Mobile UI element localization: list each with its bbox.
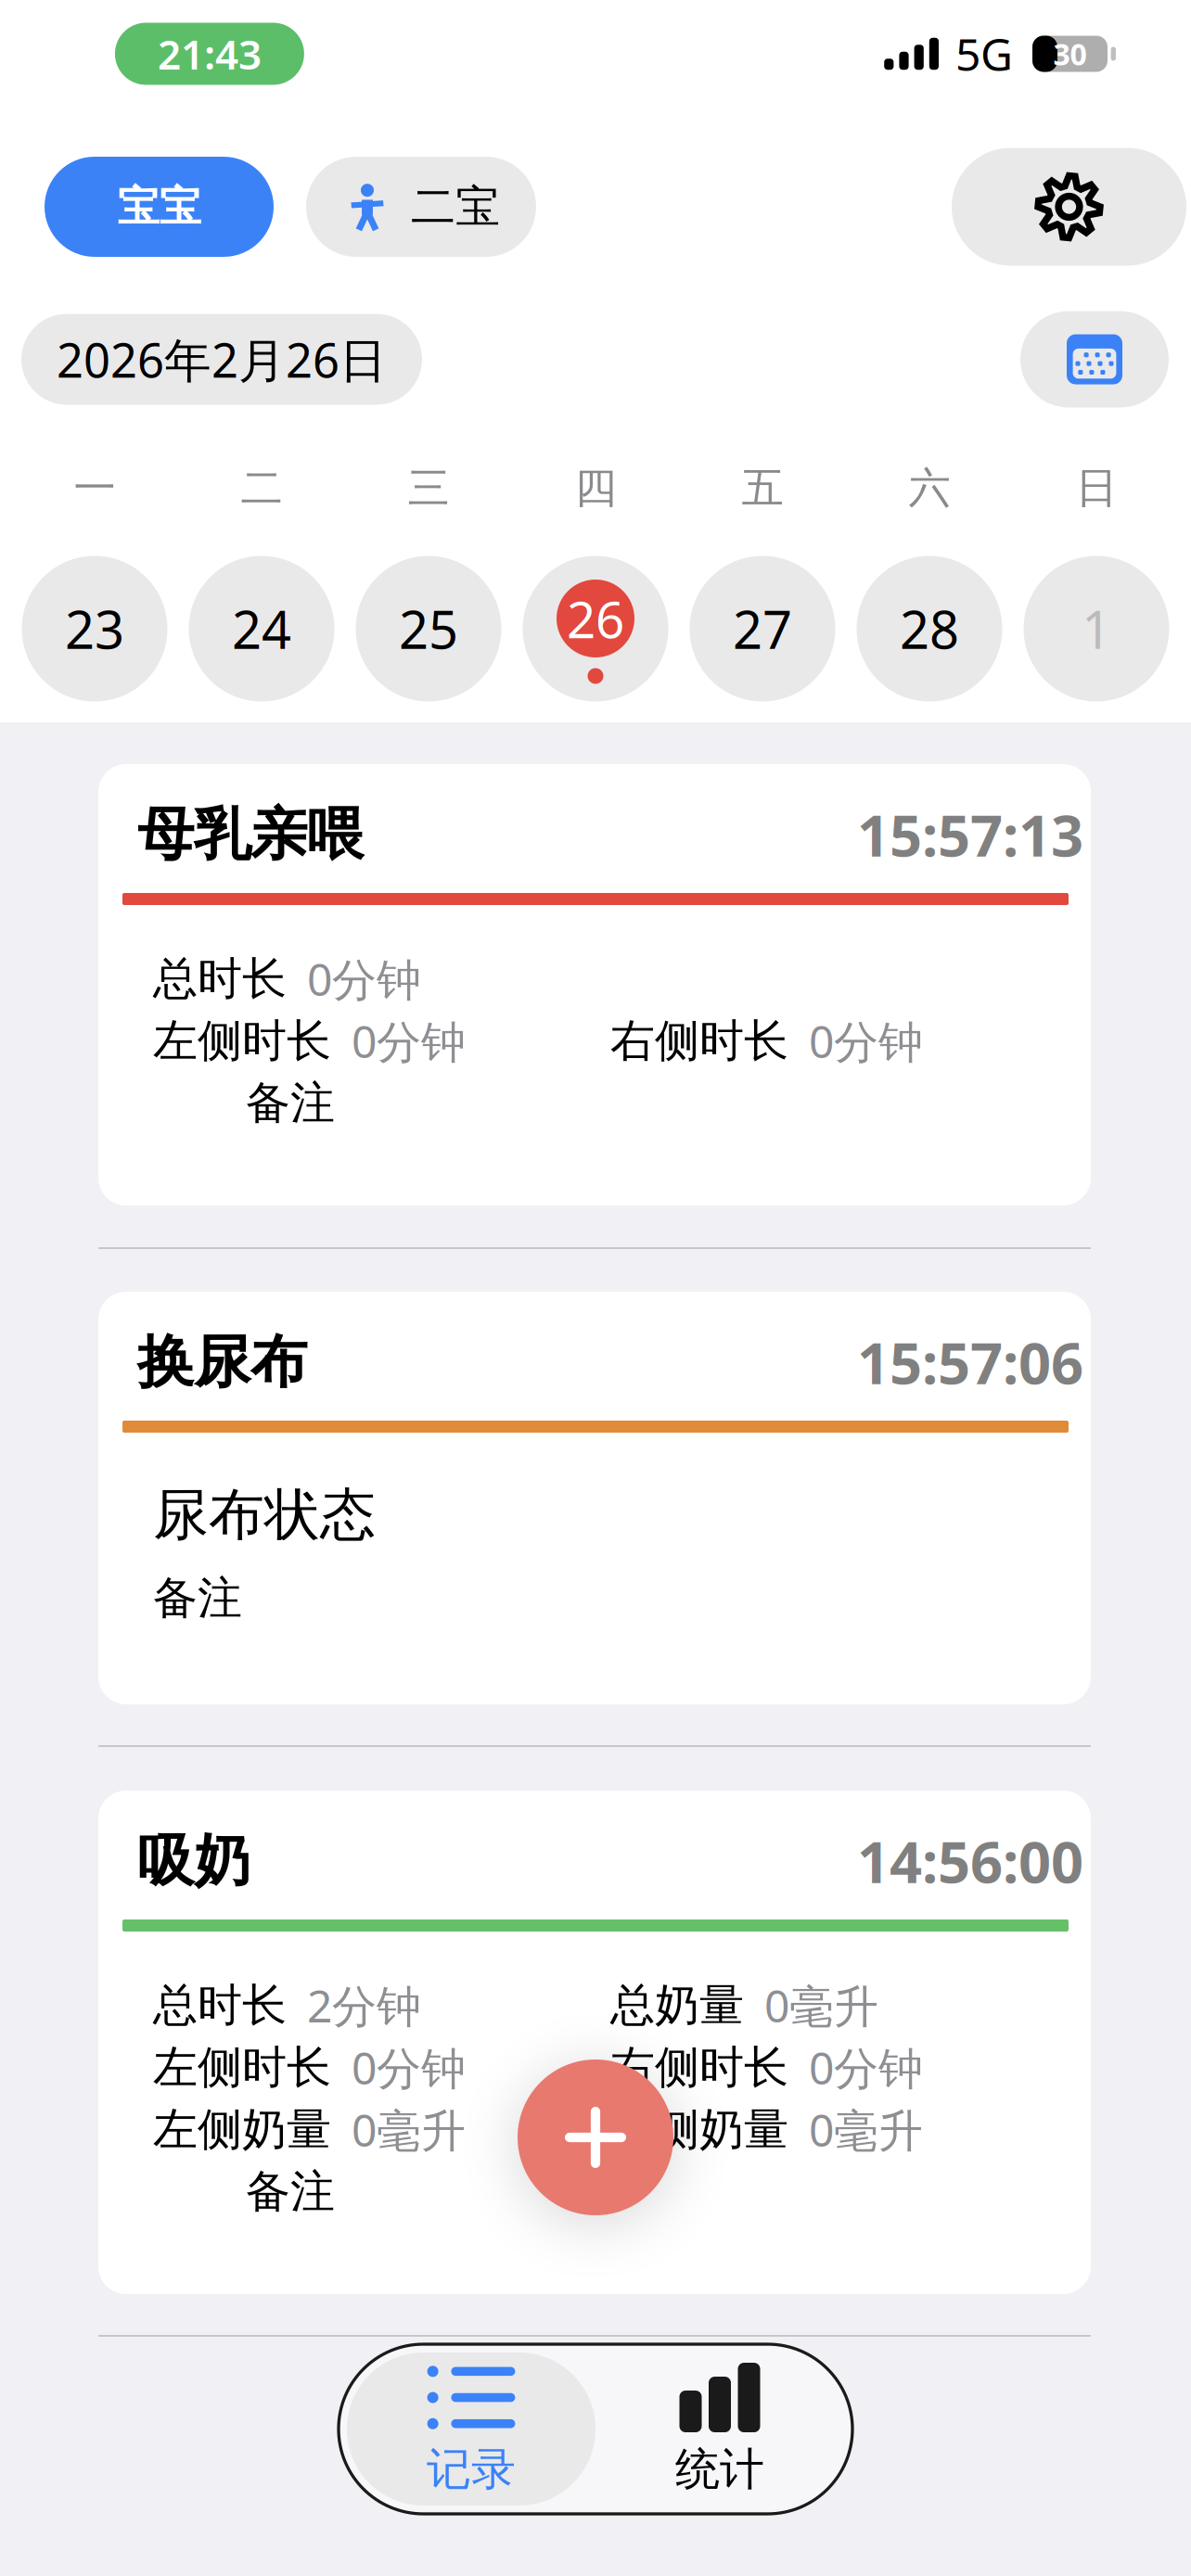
staticText: 25 (399, 594, 458, 663)
button[interactable]: 设置 (952, 148, 1186, 266)
staticText: 2026年2月26日 (57, 328, 387, 391)
staticText: 二 (241, 462, 282, 514)
staticText: 1 (1082, 594, 1111, 663)
staticText: 四 (575, 462, 616, 514)
button[interactable]: 二宝 (306, 157, 536, 257)
staticText: 5G (955, 24, 1013, 83)
staticText: 吸奶 (137, 1826, 250, 1896)
staticText: 0分钟 (352, 1011, 466, 1070)
button[interactable]: 2026年2月26日 (21, 314, 422, 405)
staticText: 右侧奶量 (610, 2102, 788, 2157)
staticText: 0分钟 (352, 2038, 466, 2097)
staticText: 26 (567, 585, 624, 652)
staticText: 0毫升 (352, 2100, 466, 2159)
button[interactable]: 1 (1024, 556, 1169, 701)
staticText: 21:43 (158, 27, 261, 81)
staticText: 二宝 (411, 179, 500, 234)
button[interactable]: 宝宝 (45, 157, 274, 257)
staticText: 2分钟 (307, 1976, 421, 2035)
staticText: 母乳亲喂 (137, 800, 364, 869)
staticText: 左侧时长 (153, 2040, 331, 2095)
staticText: 三 (408, 462, 449, 514)
button[interactable]: 26 (523, 556, 668, 701)
staticText: 统计 (675, 2442, 764, 2497)
button[interactable]: 添加记录 (518, 2060, 673, 2215)
button[interactable]: 25 (356, 556, 501, 701)
staticText: 0毫升 (809, 2100, 923, 2159)
staticText: 23 (65, 594, 124, 663)
button[interactable]: 统计 (595, 2353, 844, 2506)
staticText: 左侧时长 (153, 1014, 331, 1068)
button[interactable]: 母乳亲喂 (98, 764, 1091, 1205)
staticText: 记录 (427, 2442, 516, 2497)
staticText: 六 (909, 462, 950, 514)
staticText: 五 (742, 462, 783, 514)
staticText: 24 (232, 594, 291, 663)
staticText: 左侧奶量 (153, 2102, 331, 2157)
staticText: 15:57:13 (857, 797, 1083, 872)
staticText: 备注 (246, 1076, 335, 1130)
staticText: 尿布状态 (153, 1481, 376, 1549)
button[interactable]: 28 (857, 556, 1002, 701)
button[interactable]: 24 (189, 556, 334, 701)
staticText: 0分钟 (307, 949, 421, 1008)
button[interactable]: 日历 (1020, 311, 1169, 408)
button[interactable]: 23 (22, 556, 167, 701)
button[interactable]: 吸奶 (98, 1791, 1091, 2294)
staticText: 右侧时长 (610, 1014, 788, 1068)
staticText: 备注 (246, 2164, 335, 2219)
staticText: 28 (900, 594, 959, 663)
staticText: 14:56:00 (857, 1823, 1083, 1899)
staticText: 宝宝 (117, 181, 201, 233)
staticText: 0分钟 (809, 1011, 923, 1070)
staticText: 30 (1053, 34, 1087, 74)
staticText: 备注 (153, 1571, 242, 1626)
button[interactable]: 记录 (347, 2353, 595, 2506)
staticText: 右侧时长 (610, 2040, 788, 2095)
staticText: 一 (74, 462, 115, 514)
staticText: 27 (733, 594, 792, 663)
staticText: 日 (1076, 462, 1117, 514)
staticText: 0毫升 (764, 1976, 878, 2035)
staticText: 总奶量 (610, 1978, 744, 2033)
staticText: 总时长 (153, 1978, 287, 2033)
staticText: 0分钟 (809, 2038, 923, 2097)
staticText: 15:57:06 (857, 1324, 1083, 1400)
button[interactable]: 27 (690, 556, 835, 701)
button[interactable]: 换尿布 (98, 1292, 1091, 1704)
staticText: 总时长 (153, 951, 287, 1006)
staticText: 换尿布 (137, 1327, 307, 1397)
